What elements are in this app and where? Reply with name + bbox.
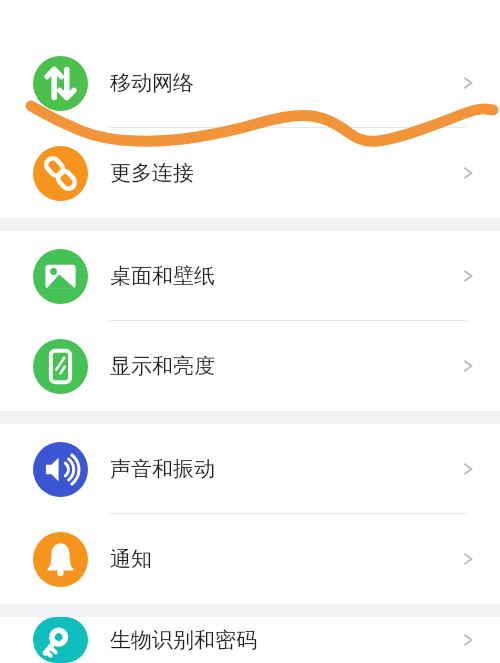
button[interactable]: 生物识别和密码 (0, 617, 500, 663)
staticText: 显示和亮度 (110, 353, 215, 379)
button[interactable]: 显示和亮度 (0, 321, 500, 411)
button[interactable]: 更多连接 (0, 128, 500, 218)
button[interactable]: 移动网络 (0, 38, 500, 128)
staticText: 通知 (110, 546, 152, 572)
staticText: 声音和振动 (110, 456, 215, 482)
staticText: 更多连接 (110, 160, 194, 186)
button[interactable]: 声音和振动 (0, 424, 500, 514)
staticText: 移动网络 (110, 70, 194, 96)
staticText: 生物识别和密码 (110, 627, 257, 653)
button[interactable]: 通知 (0, 514, 500, 604)
button[interactable]: 桌面和壁纸 (0, 231, 500, 321)
staticText: 桌面和壁纸 (110, 263, 215, 289)
